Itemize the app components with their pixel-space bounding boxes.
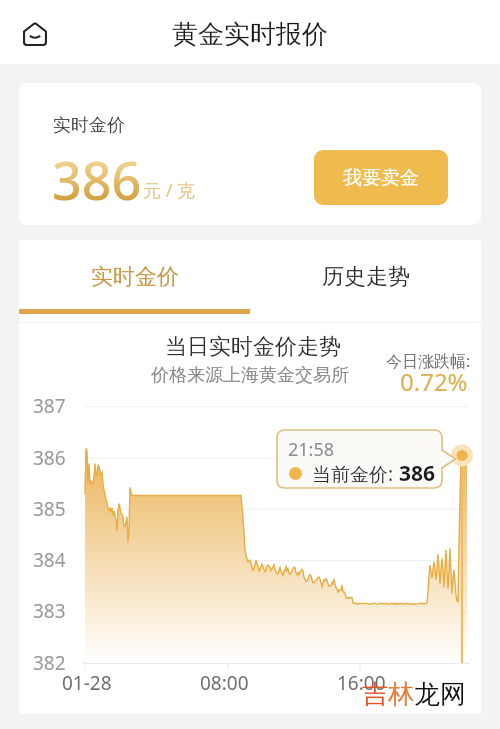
staticText: 386 (52, 144, 142, 215)
staticText: 16:00 (337, 670, 386, 696)
staticText: 383 (33, 598, 66, 624)
staticText: 387 (33, 393, 66, 419)
staticText: 元 / 克 (143, 178, 196, 203)
staticText: 384 (33, 547, 66, 573)
staticText: 01-28 (62, 670, 112, 696)
staticText: 我要卖金 (343, 166, 419, 190)
staticText: 当日实时金价走势 (165, 333, 341, 361)
staticText: 当前金价: (312, 461, 399, 487)
staticText: 今日涨跌幅: (386, 350, 471, 372)
staticText: 385 (33, 496, 66, 522)
staticText: 历史走势 (322, 263, 410, 291)
staticText: 382 (33, 650, 66, 676)
staticText: 价格来源上海黄金交易所 (151, 364, 349, 387)
staticText: 龙网 (414, 678, 466, 711)
staticText: 0.72% (400, 365, 468, 398)
button[interactable]: 历史走势 (250, 240, 481, 318)
button[interactable]: 实时金价 (19, 240, 250, 318)
staticText: 吉 (362, 678, 388, 711)
staticText: 21:58 (288, 437, 335, 462)
staticText: 黄金实时报价 (172, 18, 328, 51)
staticText: 实时金价 (53, 114, 125, 137)
staticText: 林 (388, 678, 414, 711)
staticText: 实时金价 (91, 263, 179, 291)
staticText: 08:00 (200, 670, 249, 696)
staticText: 386 (399, 459, 436, 488)
button[interactable]: Home (14, 13, 56, 55)
staticText: 386 (33, 445, 66, 471)
button[interactable]: 我要卖金 (314, 150, 448, 205)
